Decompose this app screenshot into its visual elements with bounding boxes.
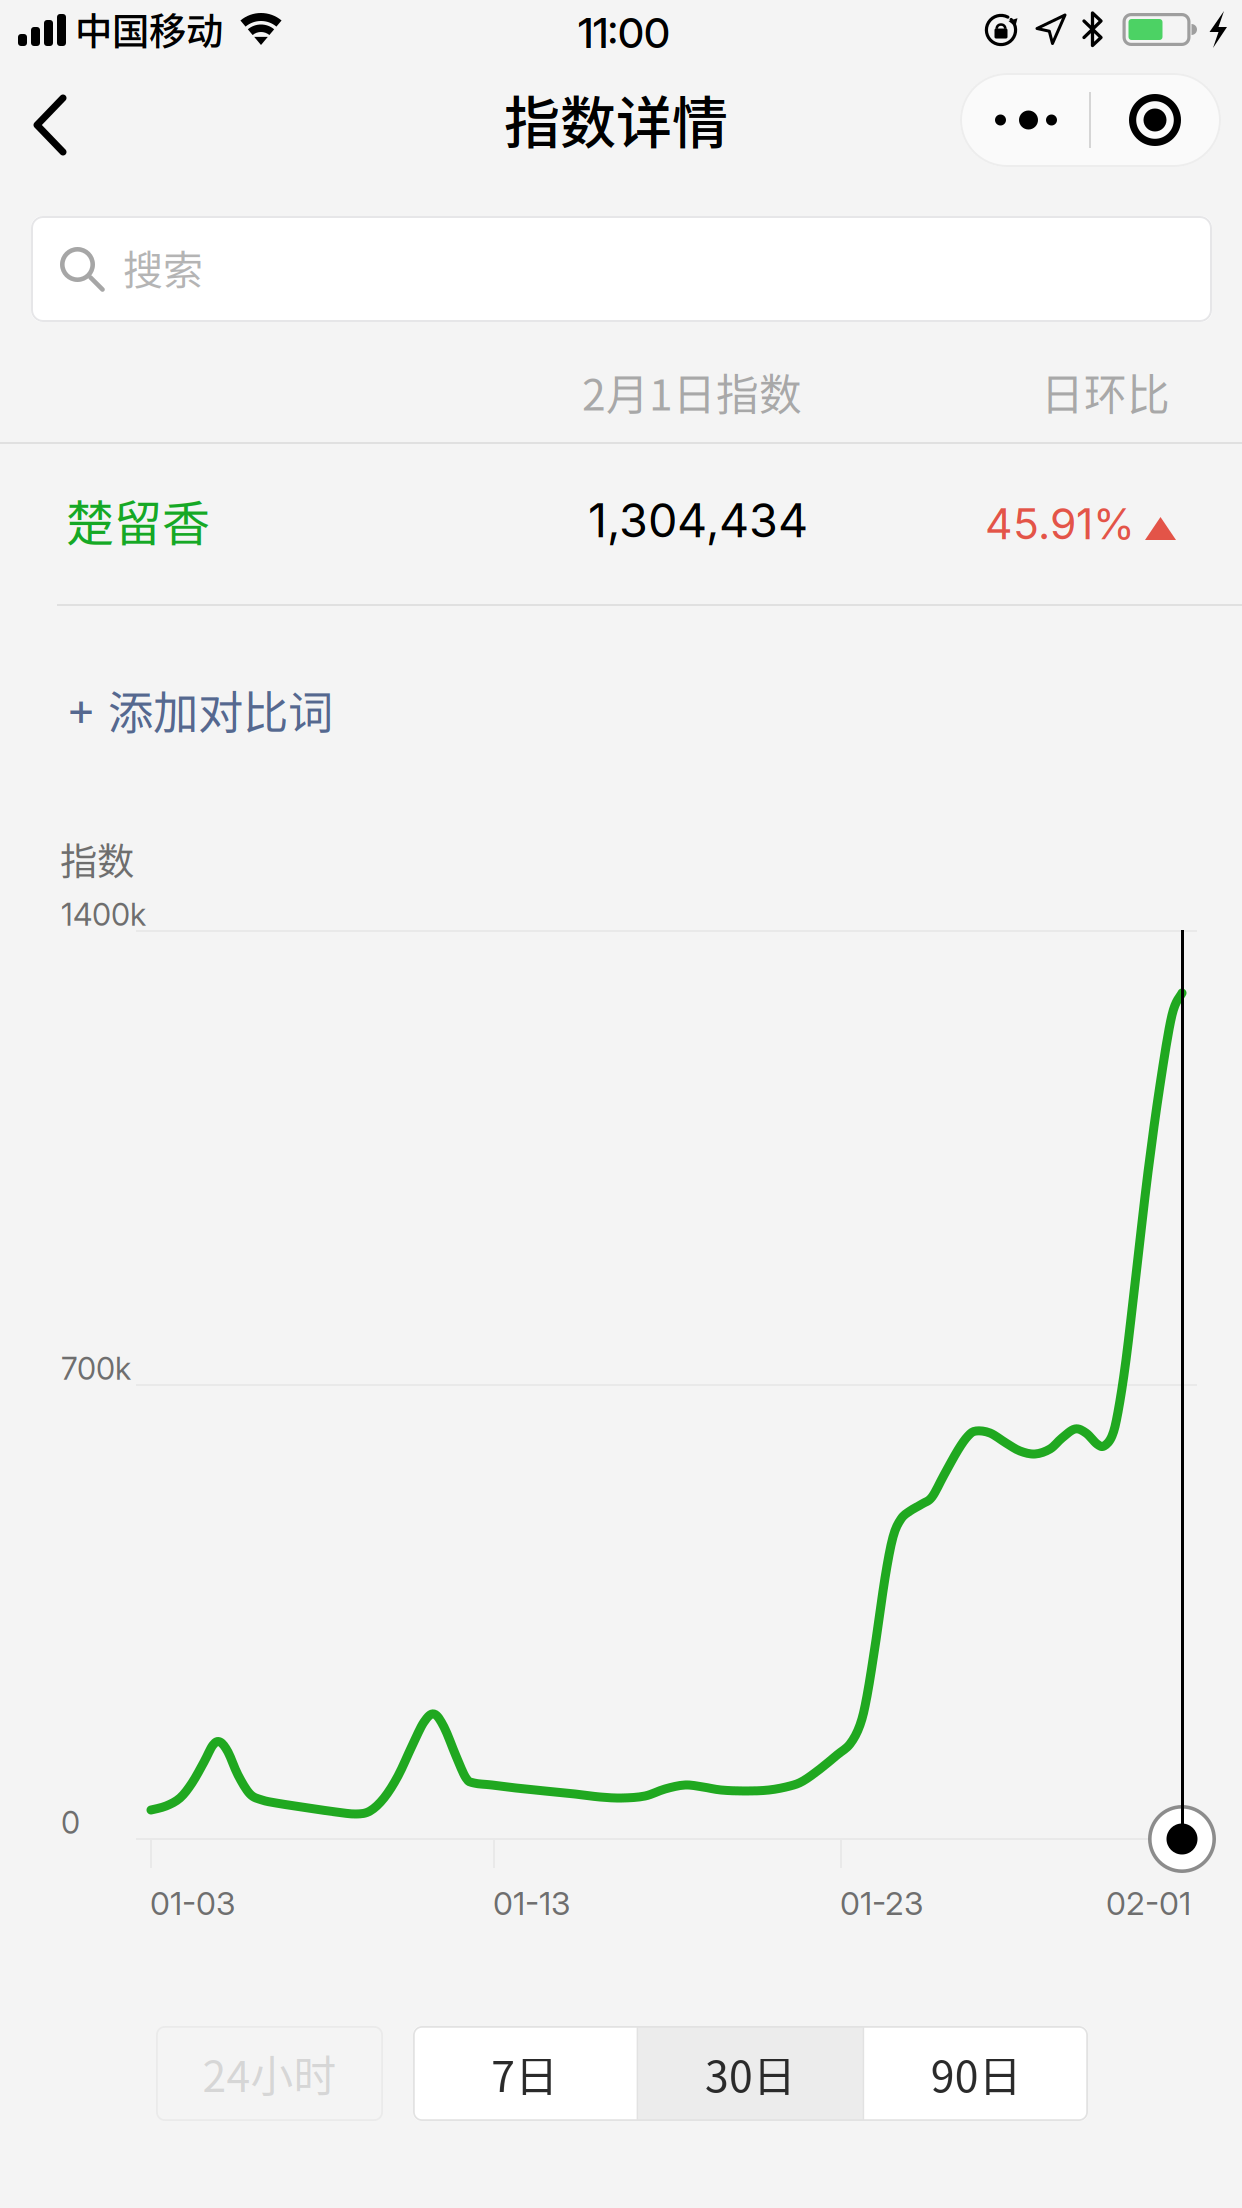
staticText: 指数详情 — [504, 78, 728, 159]
staticText: 楚留香 — [66, 485, 210, 554]
staticText: 90日 — [931, 2043, 1022, 2104]
staticText: 11:00 — [578, 8, 670, 58]
staticText: 1400k — [61, 896, 146, 933]
button[interactable]: Back — [0, 75, 100, 175]
staticText: 0 — [61, 1804, 80, 1841]
button[interactable]: 搜索 — [31, 216, 1212, 322]
staticText: 01-03 — [150, 1884, 235, 1923]
staticText: 30日 — [705, 2043, 796, 2104]
staticText: 日环比 — [1041, 361, 1170, 423]
staticText: 24小时 — [202, 2043, 336, 2104]
button[interactable]: 楚留香 — [0, 444, 1242, 606]
staticText: 01-13 — [493, 1884, 570, 1923]
staticText: 搜索 — [123, 238, 203, 296]
button[interactable]: Close mini program — [1091, 73, 1221, 167]
staticText: 2月1日指数 — [582, 361, 802, 423]
staticText: 7日 — [491, 2043, 558, 2104]
staticText: 02-01 — [1106, 1884, 1191, 1923]
staticText: 01-23 — [840, 1884, 923, 1923]
button[interactable]: More — [960, 73, 1089, 167]
staticText: 指数 — [60, 832, 134, 886]
staticText: 1,304,434 — [588, 492, 808, 548]
staticText: 45.91% — [985, 498, 1135, 550]
button[interactable]: 90日 — [864, 2026, 1088, 2121]
staticText: 中国移动 — [75, 2, 223, 56]
button[interactable]: 7日 — [413, 2026, 637, 2121]
staticText: + — [66, 681, 96, 736]
button[interactable]: 24小时 — [156, 2026, 383, 2121]
staticText: 700k — [61, 1350, 131, 1387]
staticText: 添加对比词 — [108, 677, 333, 743]
button[interactable]: + — [0, 650, 1242, 760]
button[interactable]: 30日 — [638, 2026, 862, 2121]
